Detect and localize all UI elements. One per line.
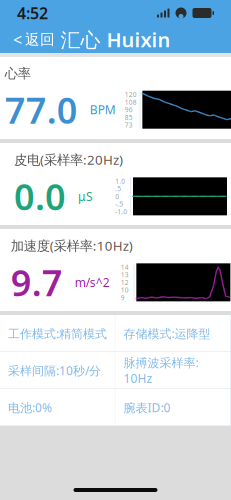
staticText: 9 (121, 293, 125, 302)
staticText: 108 (125, 98, 137, 107)
staticText: 存储模式:运降型 (123, 325, 210, 341)
staticText: 电池:0% (8, 399, 52, 415)
staticText: BPM (90, 102, 116, 118)
button[interactable]: 采样间隔:10秒/分 (0, 352, 115, 389)
button[interactable]: < (3, 23, 65, 56)
staticText: 0.0 (14, 172, 66, 220)
staticText: 0 (115, 192, 119, 201)
staticText: 皮电(采样率:20Hz) (14, 151, 123, 168)
staticText: 14 (121, 263, 129, 272)
button[interactable]: 脉搏波采样率:10Hz (115, 352, 231, 389)
staticText: < (13, 29, 22, 50)
staticText: 13 (121, 270, 129, 279)
staticText: 心率 (5, 65, 31, 82)
staticText: m/s^2 (75, 274, 110, 290)
staticText: μS (78, 188, 93, 204)
staticText: 12 (121, 278, 129, 287)
staticText: 加速度(采样率:10Hz) (11, 237, 133, 254)
staticText: 96 (125, 105, 133, 114)
staticText: 4:52 (17, 2, 48, 24)
staticText: 120 (125, 90, 137, 99)
staticText: 77.0 (5, 86, 78, 134)
staticText: 腕表ID:0 (123, 399, 170, 415)
staticText: 85 (125, 113, 133, 122)
button[interactable]: 电池:0% (0, 389, 115, 426)
staticText: 10 (121, 285, 129, 294)
staticText: 73 (125, 120, 133, 129)
staticText: 返回 (25, 30, 55, 48)
staticText: 脉搏波采样率:10Hz (123, 355, 198, 386)
button[interactable]: 腕表ID:0 (115, 389, 231, 426)
staticText: 1.0 (115, 177, 125, 186)
staticText: 工作模式:精简模式 (8, 325, 107, 341)
button[interactable]: 工作模式:精简模式 (0, 315, 115, 352)
staticText: -.5 (115, 199, 123, 208)
staticText: 采样间隔:10秒/分 (8, 362, 101, 378)
button[interactable]: 存储模式:运降型 (115, 315, 231, 352)
staticText: 汇心 Huixin (60, 26, 170, 53)
staticText: 9.7 (11, 258, 63, 306)
staticText: -1.0 (115, 207, 127, 216)
staticText: .5 (115, 184, 121, 193)
